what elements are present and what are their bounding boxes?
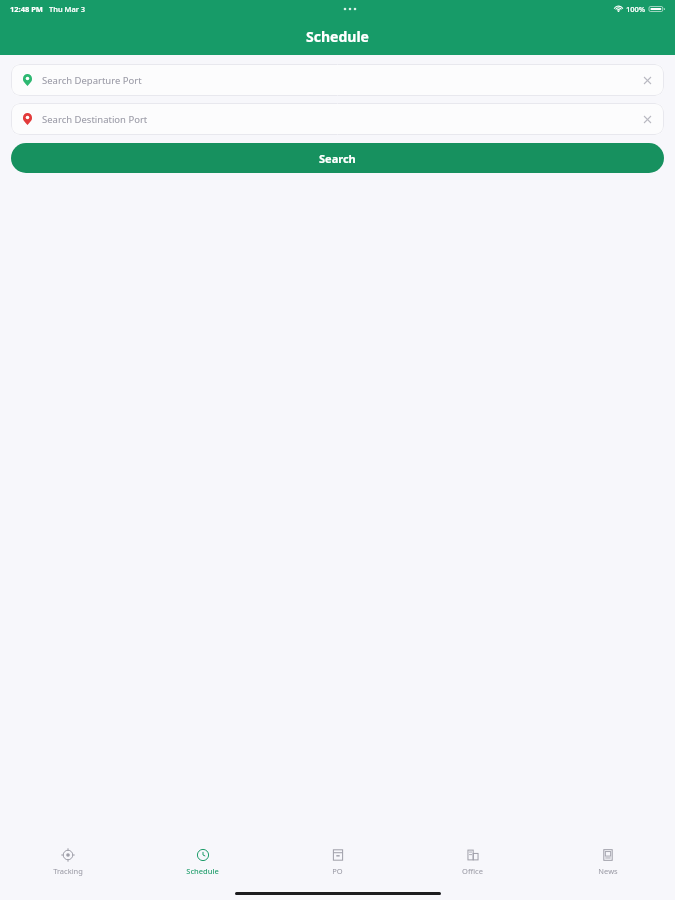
staticText: 12:48 PM xyxy=(10,4,43,14)
staticText: 100% xyxy=(626,4,646,14)
staticText: Office xyxy=(462,866,483,876)
staticText: Search Departure Port xyxy=(42,74,634,87)
button[interactable]: News xyxy=(540,838,675,886)
button[interactable]: PO xyxy=(270,838,405,886)
staticText: Thu Mar 3 xyxy=(49,4,86,14)
staticText: Schedule xyxy=(306,27,369,46)
button[interactable]: Search xyxy=(11,143,664,173)
button[interactable]: Tracking xyxy=(0,838,135,886)
button[interactable]: Search Departure Port xyxy=(11,64,664,96)
button[interactable]: Office xyxy=(405,838,540,886)
staticText: Search xyxy=(319,151,356,166)
staticText: Tracking xyxy=(53,866,83,876)
staticText: Schedule xyxy=(186,866,219,876)
staticText: News xyxy=(598,866,618,876)
button[interactable]: Search Destination Port xyxy=(11,103,664,135)
staticText: PO xyxy=(332,866,343,876)
staticText: Search Destination Port xyxy=(42,113,634,126)
button[interactable]: Clear departure port xyxy=(634,67,660,93)
button[interactable]: Clear destination port xyxy=(634,106,660,132)
button[interactable]: Schedule xyxy=(135,838,270,886)
